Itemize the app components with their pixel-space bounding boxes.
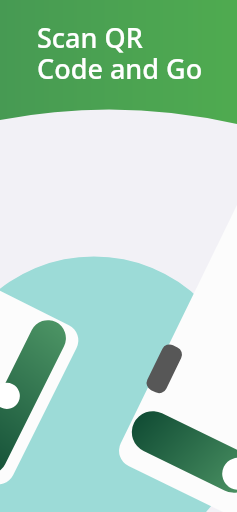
- staticText: Scan QR Code and Go: [37, 19, 203, 87]
